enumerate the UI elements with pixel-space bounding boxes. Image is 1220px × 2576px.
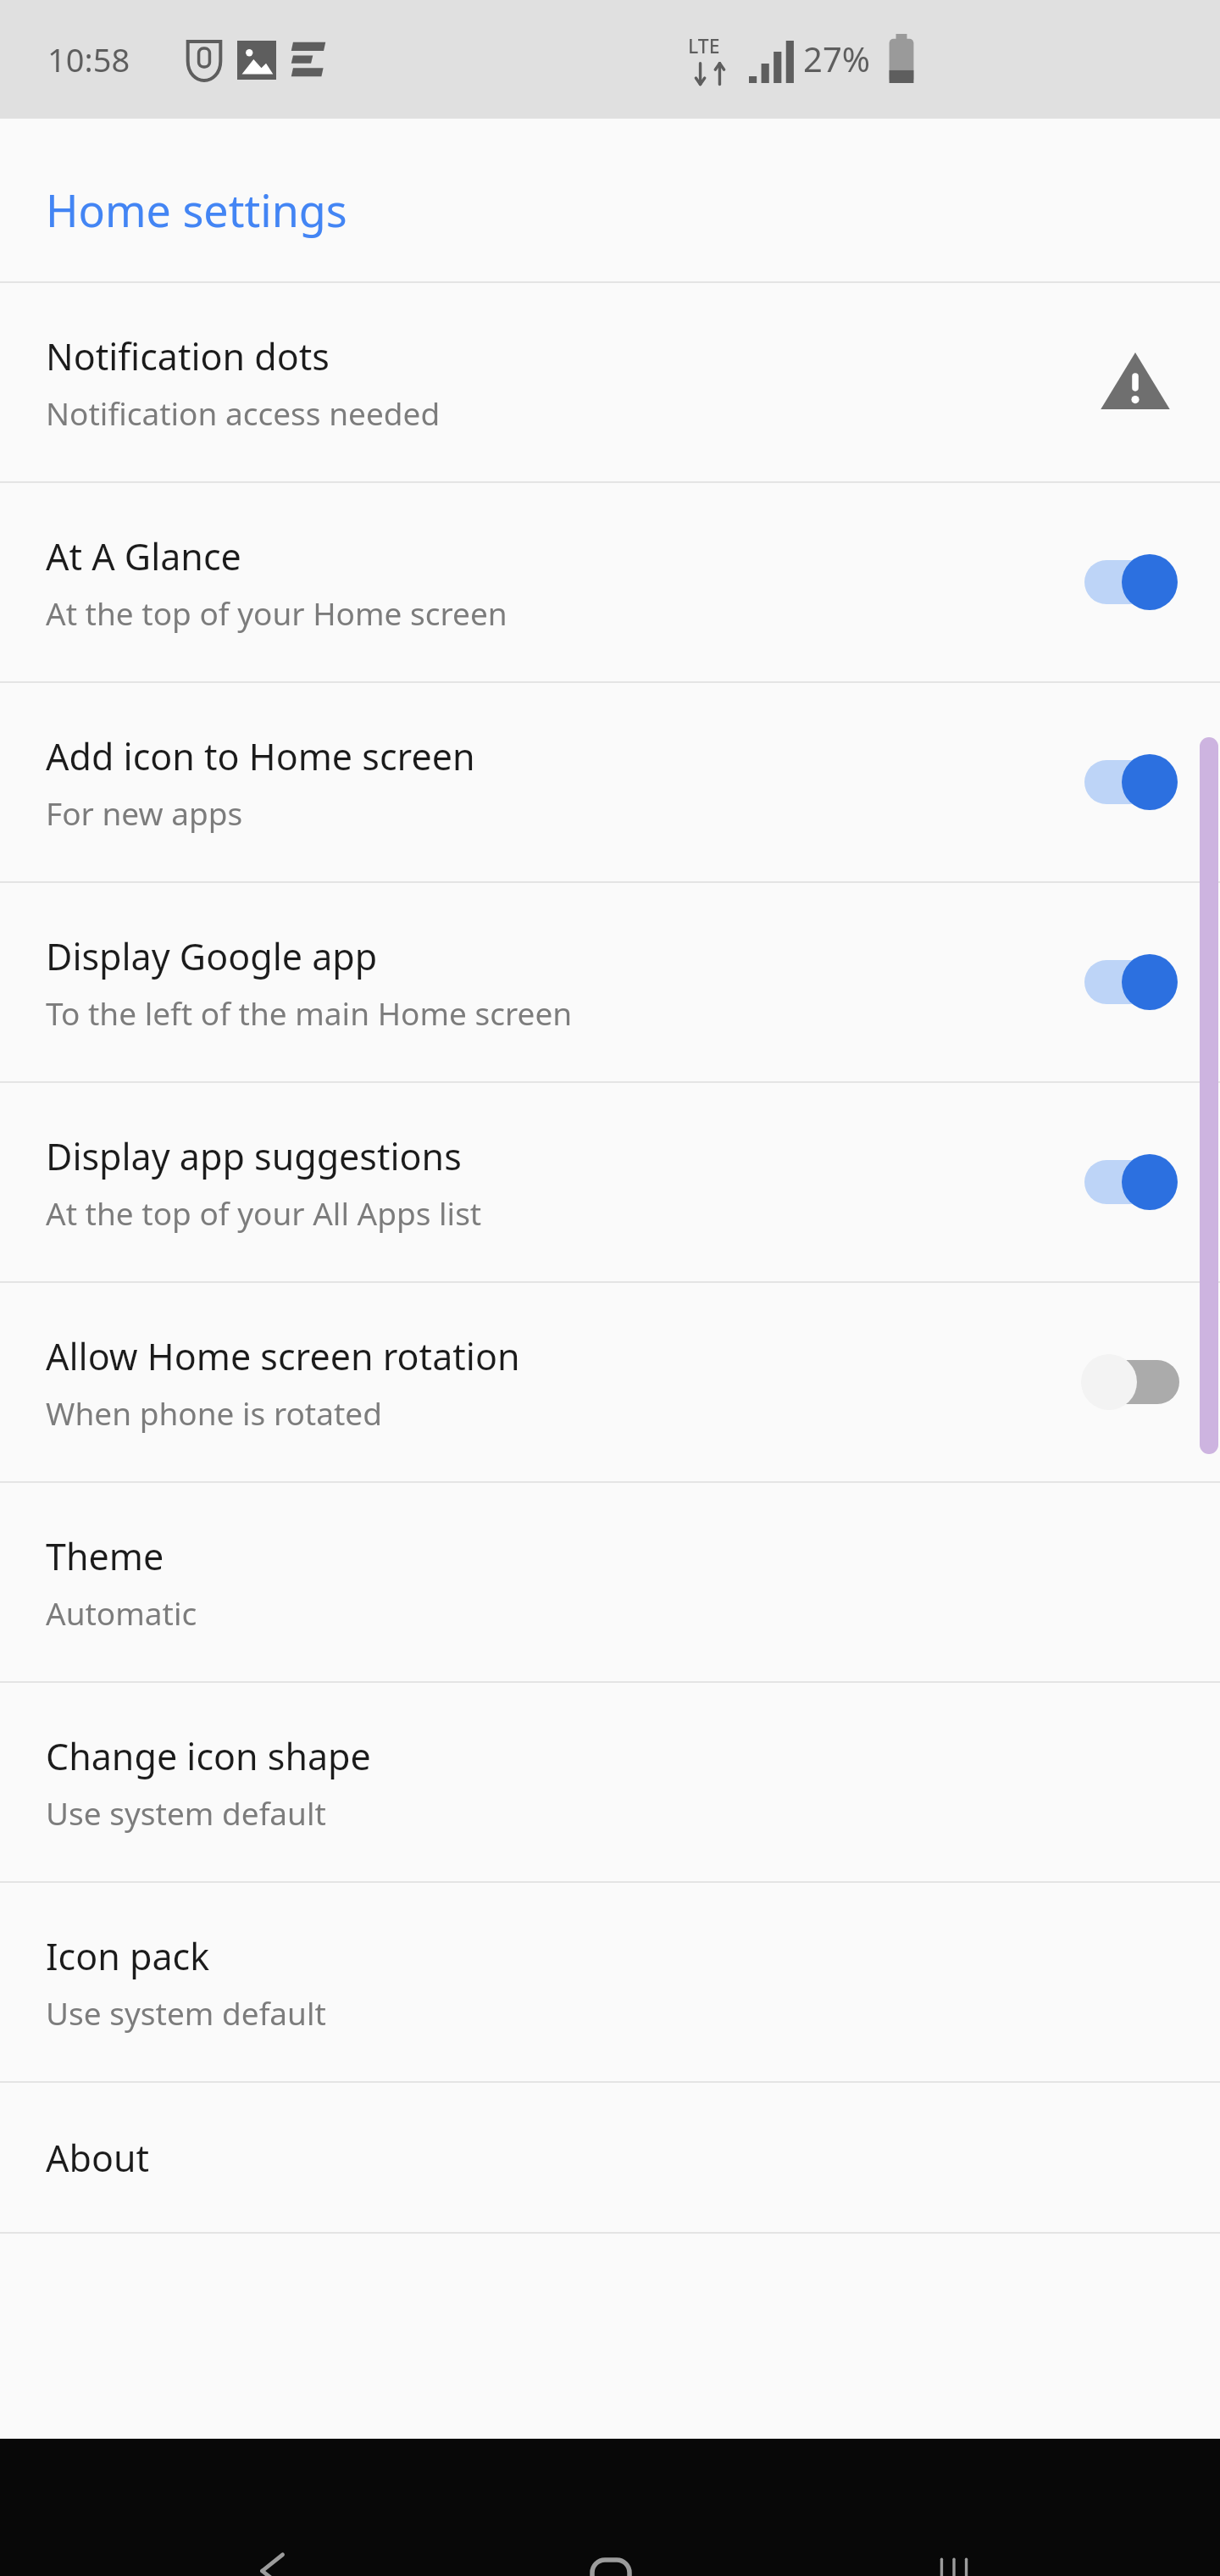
button[interactable]: Toggle on (1076, 1141, 1195, 1223)
staticText: Display Google app (46, 931, 378, 981)
staticText: For new apps (46, 791, 243, 834)
button[interactable]: Allow Home screen rotation (0, 1283, 1220, 1481)
staticText: Add icon to Home screen (46, 731, 475, 781)
staticText: To the left of the main Home screen (46, 991, 573, 1034)
button[interactable]: Display Google app (0, 883, 1220, 1081)
button[interactable]: Toggle on (1076, 941, 1195, 1023)
button[interactable]: Toggle off (1076, 1341, 1195, 1423)
button[interactable]: Toggle on (1076, 741, 1195, 823)
staticText: Icon pack (46, 1931, 210, 1981)
button[interactable]: At A Glance (0, 483, 1220, 681)
staticText: 10:58 (47, 37, 130, 81)
button[interactable]: Display app suggestions (0, 1083, 1220, 1281)
button[interactable]: Notification dots (0, 283, 1220, 481)
staticText: Use system default (46, 1991, 326, 2034)
button[interactable]: Notification access needed warning (1095, 341, 1176, 423)
staticText: Change icon shape (46, 1731, 371, 1781)
staticText: About (46, 2133, 150, 2183)
staticText: Notification dots (46, 331, 330, 381)
button[interactable]: Icon pack (0, 1883, 1220, 2081)
button[interactable]: Change icon shape (0, 1683, 1220, 1881)
staticText: Home settings (46, 180, 347, 240)
button[interactable]: Toggle on (1076, 541, 1195, 623)
button[interactable]: Theme (0, 1483, 1220, 1681)
button[interactable]: Back (205, 2439, 1220, 2576)
staticText: Notification access needed (46, 391, 441, 434)
staticText: At the top of your Home screen (46, 591, 507, 634)
staticText: Display app suggestions (46, 1131, 462, 1181)
staticText: At A Glance (46, 531, 241, 581)
staticText: Theme (46, 1531, 164, 1581)
button[interactable]: Home (542, 2439, 1220, 2576)
staticText: LTE (688, 32, 720, 58)
staticText: 27% (803, 36, 870, 81)
button[interactable]: About (0, 2083, 1220, 2232)
staticText: Allow Home screen rotation (46, 1331, 520, 1381)
staticText: Use system default (46, 1791, 326, 1834)
staticText: At the top of your All Apps list (46, 1191, 482, 1234)
button[interactable]: Recent apps (886, 2439, 1220, 2576)
staticText: When phone is rotated (46, 1391, 382, 1434)
button[interactable]: Add icon to Home screen (0, 683, 1220, 881)
staticText: Automatic (46, 1591, 197, 1634)
